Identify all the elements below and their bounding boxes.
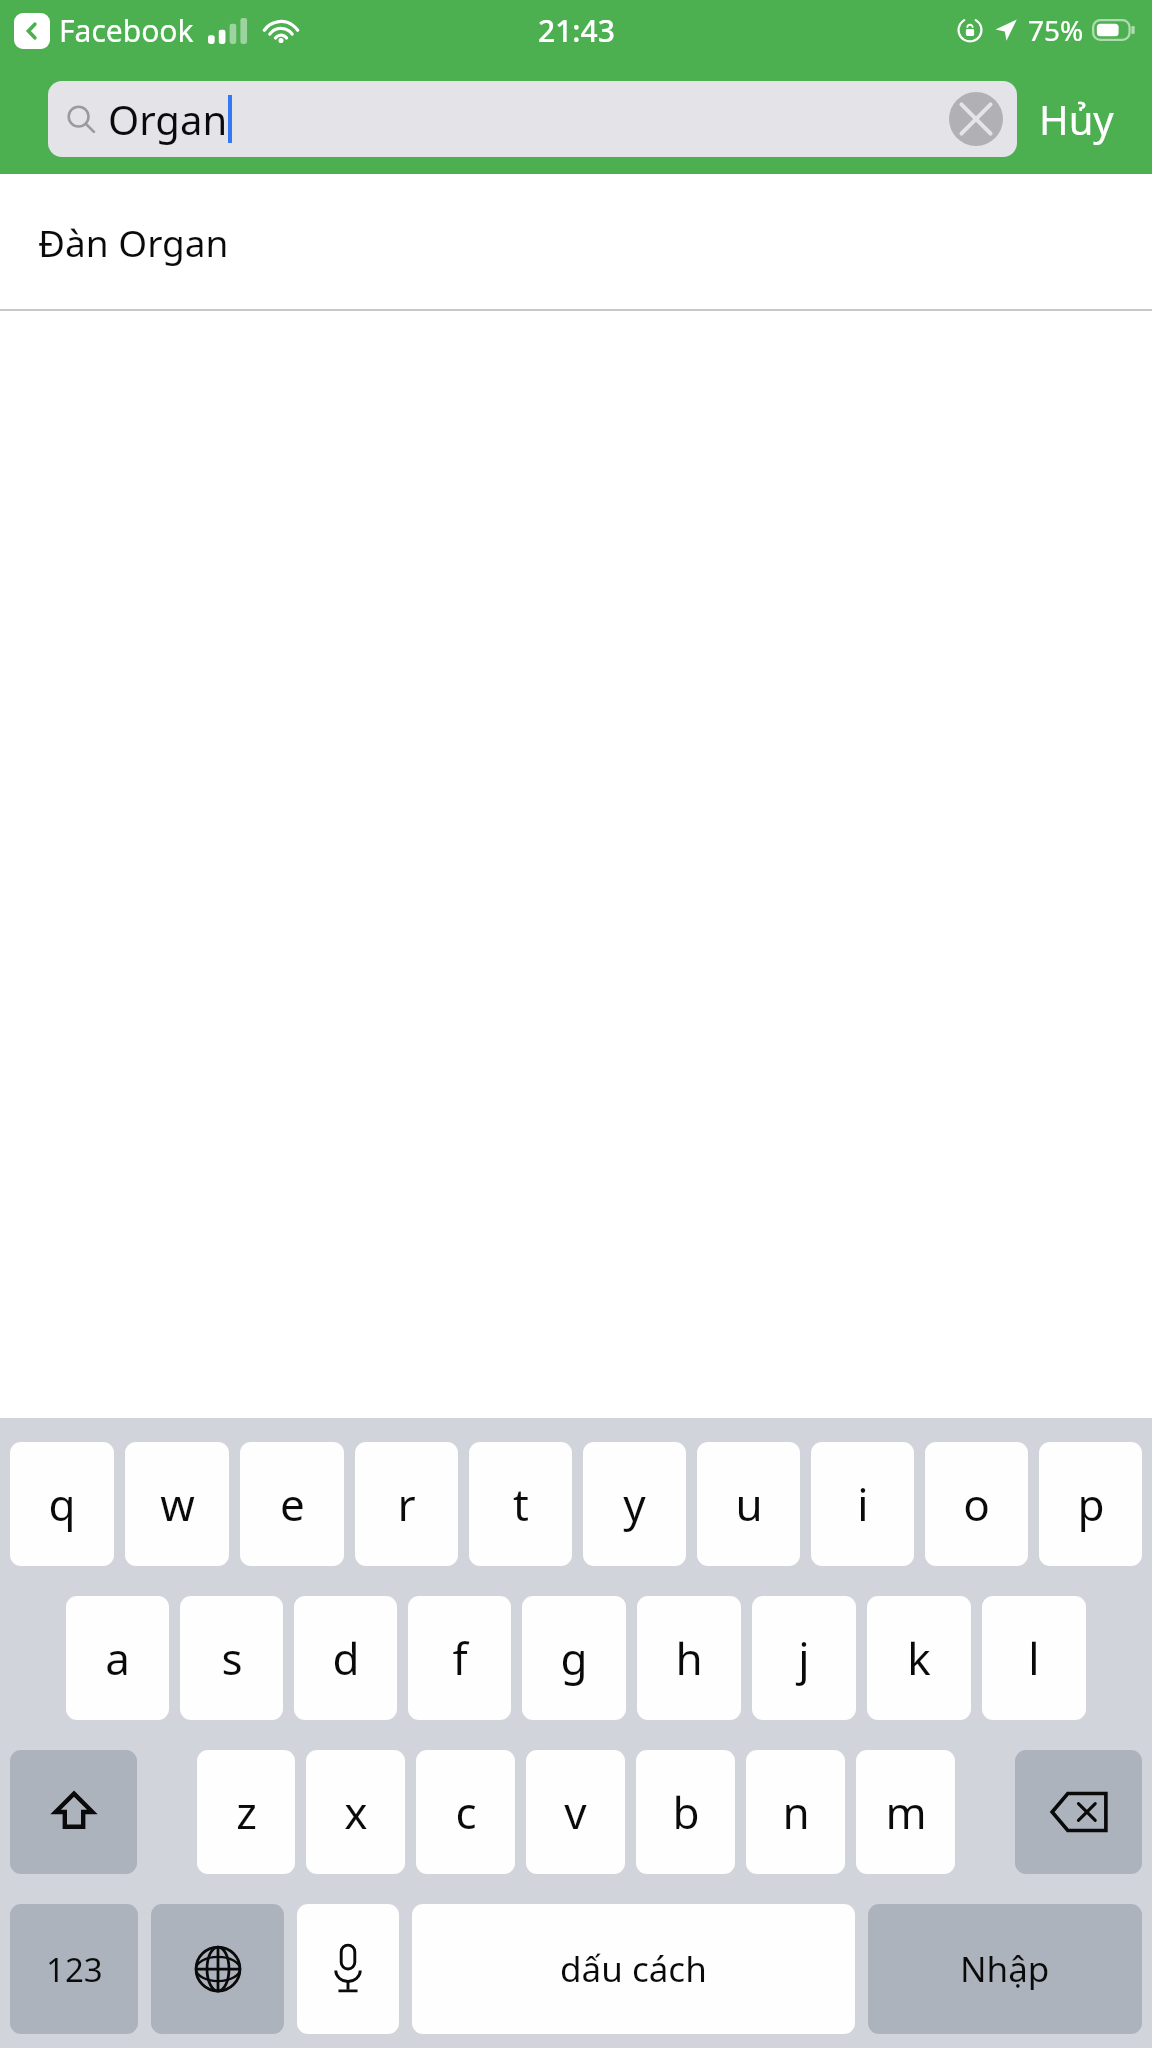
staticText: f	[452, 1628, 468, 1688]
staticText: k	[907, 1628, 931, 1688]
staticText: v	[564, 1782, 587, 1842]
button[interactable]: Back to Facebook	[14, 13, 50, 49]
staticText: Hủy	[1039, 92, 1114, 146]
staticText: i	[857, 1474, 869, 1534]
button[interactable]: Clear search text	[949, 92, 1003, 146]
button[interactable]: q	[10, 1442, 114, 1566]
button[interactable]: c	[416, 1750, 515, 1874]
button[interactable]: s	[180, 1596, 283, 1720]
button[interactable]: g	[522, 1596, 626, 1720]
staticText: p	[1077, 1474, 1105, 1534]
staticText: q	[48, 1474, 76, 1534]
button[interactable]: y	[583, 1442, 686, 1566]
staticText: 75%	[1028, 11, 1084, 49]
button[interactable]: m	[856, 1750, 955, 1874]
staticText: s	[221, 1628, 243, 1688]
staticText: Đàn Organ	[38, 217, 229, 267]
button[interactable]: Nhập	[868, 1904, 1142, 2034]
button[interactable]: Voice input	[297, 1904, 399, 2034]
staticText: w	[160, 1474, 195, 1534]
button[interactable]: t	[469, 1442, 572, 1566]
staticText: n	[782, 1782, 810, 1842]
button[interactable]: k	[867, 1596, 971, 1720]
staticText: t	[513, 1474, 529, 1534]
staticText: e	[280, 1474, 305, 1534]
button[interactable]: Shift	[10, 1750, 137, 1874]
staticText: dấu cách	[560, 1945, 707, 1993]
staticText: h	[675, 1628, 703, 1688]
button[interactable]: h	[637, 1596, 741, 1720]
button[interactable]: Switch keyboard language	[151, 1904, 284, 2034]
button[interactable]: 123	[10, 1904, 138, 2034]
button[interactable]: i	[811, 1442, 914, 1566]
staticText: 21:43	[538, 10, 615, 51]
button[interactable]: Hủy	[1017, 81, 1136, 157]
staticText: u	[735, 1474, 763, 1534]
staticText: r	[397, 1474, 416, 1534]
button[interactable]: f	[408, 1596, 511, 1720]
staticText: Facebook	[59, 10, 194, 51]
staticText: g	[560, 1628, 588, 1688]
button[interactable]: a	[66, 1596, 169, 1720]
button[interactable]: b	[636, 1750, 735, 1874]
button[interactable]: z	[197, 1750, 295, 1874]
staticText: j	[798, 1628, 810, 1688]
staticText: Organ	[108, 92, 228, 146]
staticText: c	[455, 1782, 477, 1842]
button[interactable]: x	[306, 1750, 405, 1874]
staticText: o	[963, 1474, 990, 1534]
staticText: b	[672, 1782, 700, 1842]
button[interactable]: v	[526, 1750, 625, 1874]
button[interactable]: Đàn Organ	[0, 174, 1152, 309]
button[interactable]: r	[355, 1442, 458, 1566]
staticText: z	[236, 1782, 257, 1842]
button[interactable]: Organ	[48, 81, 1017, 157]
button[interactable]: w	[125, 1442, 229, 1566]
staticText: m	[885, 1782, 927, 1842]
staticText: Nhập	[960, 1945, 1050, 1993]
button[interactable]: u	[697, 1442, 800, 1566]
button[interactable]: l	[982, 1596, 1086, 1720]
button[interactable]: dấu cách	[412, 1904, 855, 2034]
button[interactable]: n	[746, 1750, 845, 1874]
button[interactable]: e	[240, 1442, 344, 1566]
button[interactable]: d	[294, 1596, 397, 1720]
staticText: d	[332, 1628, 360, 1688]
button[interactable]: j	[752, 1596, 856, 1720]
button[interactable]: o	[925, 1442, 1028, 1566]
button[interactable]: Backspace	[1015, 1750, 1142, 1874]
staticText: l	[1028, 1628, 1040, 1688]
staticText: y	[623, 1474, 646, 1534]
staticText: 123	[46, 1947, 103, 1992]
button[interactable]: p	[1039, 1442, 1142, 1566]
staticText: x	[344, 1782, 368, 1842]
staticText: a	[105, 1628, 130, 1688]
